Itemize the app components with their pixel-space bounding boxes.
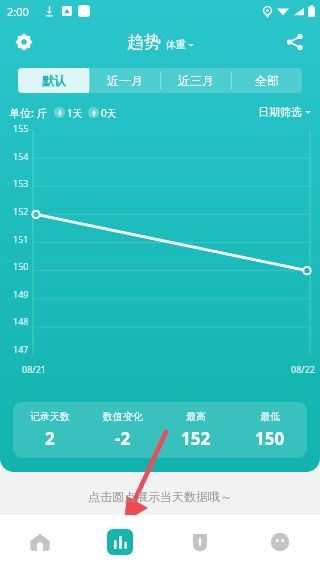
button[interactable]: Tools [160, 515, 240, 569]
staticText: 日期筛选 [258, 105, 302, 119]
button[interactable]: 日期筛选 [258, 105, 311, 119]
staticText: 近一月 [107, 73, 143, 88]
staticText: 数值变化 [103, 410, 143, 423]
button[interactable]: 近一月 [89, 68, 160, 93]
button[interactable]: Share [279, 26, 311, 58]
staticText: 08/21 [22, 363, 46, 375]
staticText: 体重 [166, 38, 186, 51]
staticText: -2 [115, 427, 131, 450]
staticText: 150 [13, 260, 29, 272]
button[interactable]: Trends [80, 515, 160, 569]
staticText: 记录天数 [30, 410, 70, 423]
button[interactable]: 全部 [231, 68, 302, 93]
staticText: 趋势 [127, 32, 161, 53]
staticText: 154 [13, 150, 29, 162]
staticText: 149 [13, 288, 29, 300]
staticText: 147 [13, 343, 29, 355]
staticText: 155 [13, 122, 29, 134]
button[interactable]: Settings [8, 26, 40, 58]
button[interactable]: 体重 [166, 38, 194, 51]
staticText: 最高 [186, 410, 206, 423]
staticText: 153 [13, 177, 29, 189]
staticText: 152 [181, 427, 211, 450]
staticText: 1天 [67, 106, 83, 120]
staticText: 近三月 [178, 73, 214, 88]
button[interactable]: Home [0, 515, 80, 569]
staticText: 默认 [42, 73, 66, 88]
button[interactable]: 近三月 [160, 68, 231, 93]
button[interactable]: 默认 [18, 68, 89, 93]
staticText: 全部 [255, 73, 279, 88]
staticText: 150 [255, 427, 285, 450]
button[interactable]: 记录天数 [13, 402, 307, 458]
staticText: 最低 [260, 410, 280, 423]
staticText: 单位: 斤 [9, 105, 48, 120]
staticText: 点击圆点展示当天数据哦～ [88, 489, 232, 504]
button[interactable]: Profile [240, 515, 320, 569]
staticText: 0天 [101, 106, 117, 120]
staticText: 08/22 [291, 363, 315, 375]
staticText: 148 [13, 315, 29, 327]
staticText: 2:00 [7, 4, 29, 19]
staticText: 151 [13, 233, 29, 245]
staticText: 2 [45, 427, 55, 450]
staticText: 152 [13, 205, 29, 217]
